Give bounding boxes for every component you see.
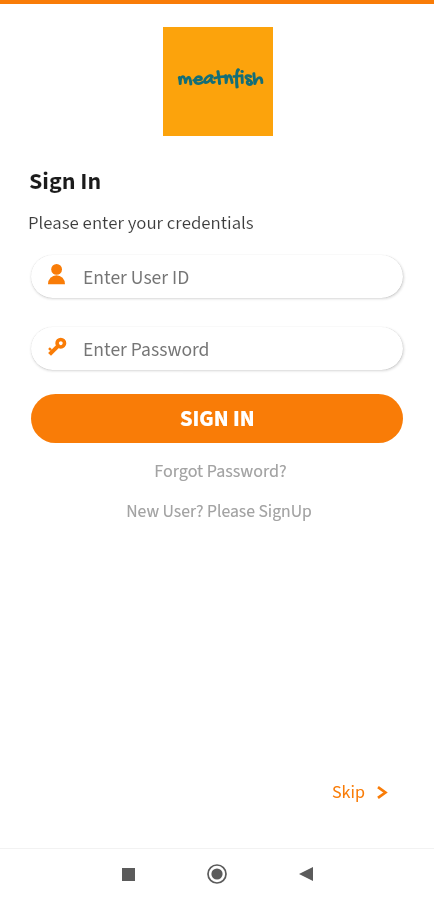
staticText: New User? Please SignUp xyxy=(126,499,312,524)
button[interactable]: Home xyxy=(189,848,245,900)
button[interactable]: Skip xyxy=(330,780,389,806)
staticText: Enter Password xyxy=(83,336,210,364)
button[interactable]: Forgot Password? xyxy=(0,459,434,485)
button[interactable]: Enter User ID xyxy=(31,255,403,298)
staticText: Please enter your credentials xyxy=(28,210,254,237)
staticText: Enter User ID xyxy=(83,264,190,292)
button[interactable]: Back xyxy=(278,848,334,900)
button[interactable]: New User? Please SignUp xyxy=(0,498,434,524)
staticText: Forgot Password? xyxy=(154,459,287,485)
staticText: Skip xyxy=(332,780,365,806)
button[interactable]: Recent apps xyxy=(100,848,156,900)
button[interactable]: SIGN IN xyxy=(31,394,403,443)
button[interactable]: Enter Password xyxy=(31,327,403,370)
staticText: Sign In xyxy=(29,164,102,198)
staticText: meatnfish xyxy=(177,68,263,93)
staticText: SIGN IN xyxy=(180,403,255,435)
